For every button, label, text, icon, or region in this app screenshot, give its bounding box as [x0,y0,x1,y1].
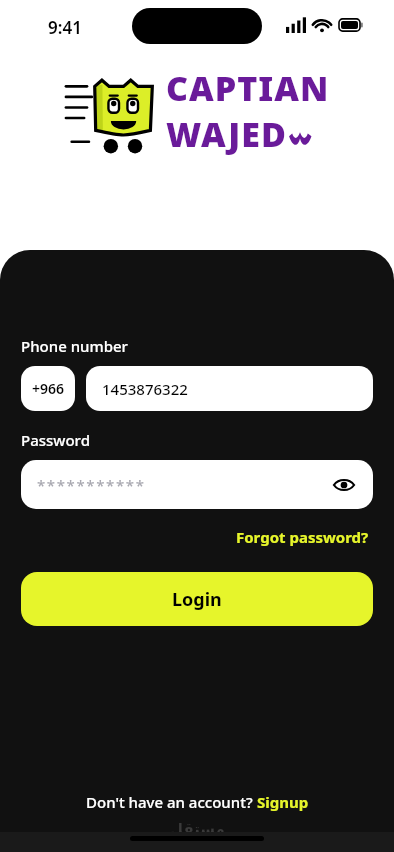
button[interactable]: *********** [21,460,373,509]
staticText: Forgot password? [236,527,369,547]
staticText: مستقل [170,820,225,837]
staticText: *********** [37,475,146,495]
staticText: 1453876322 [102,379,188,399]
staticText: Login [172,587,222,612]
staticText: WAJED [166,111,287,157]
staticText: mostaql.com [173,837,222,848]
button[interactable]: +966 [21,366,75,411]
button[interactable]: Signup [257,792,309,812]
staticText: Don't have an account? [86,792,257,812]
staticText: CAPTIAN [166,65,330,111]
staticText: Signup [257,792,309,812]
staticText: 9:41 [48,16,82,39]
button[interactable]: Show password [331,472,357,498]
button[interactable]: Forgot password? [232,523,373,551]
staticText: +966 [32,379,65,398]
staticText: Password [21,430,90,450]
staticText: Phone number [21,336,128,356]
button[interactable]: Login [21,572,373,626]
button[interactable]: 1453876322 [86,366,373,411]
